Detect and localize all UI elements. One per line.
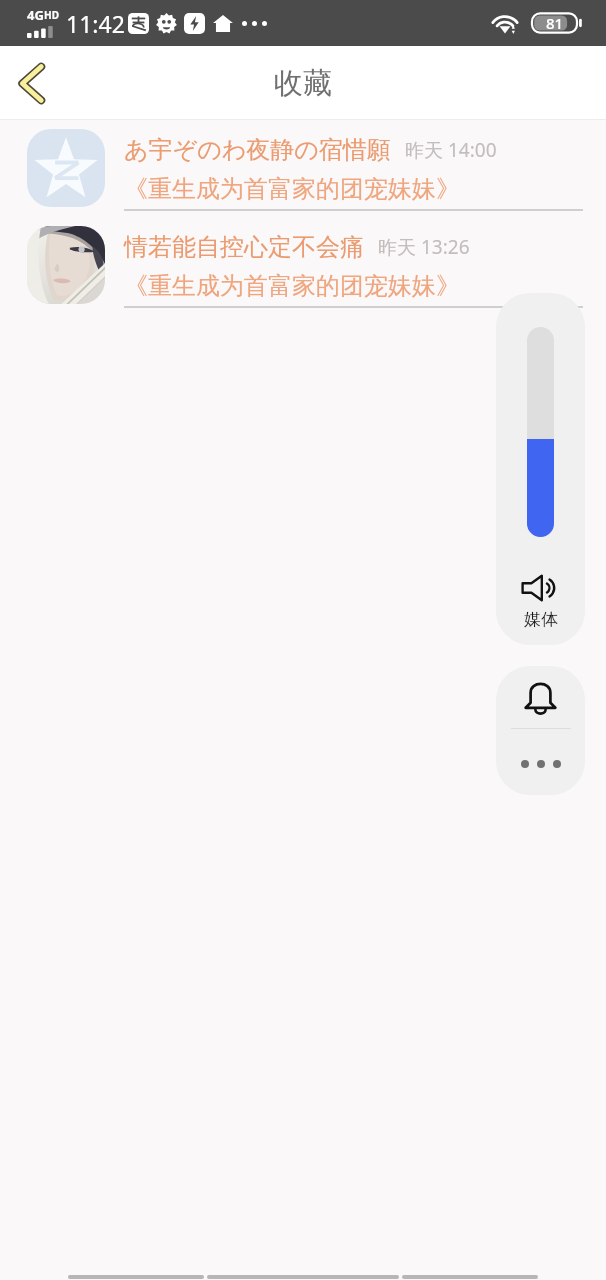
staticText: 情若能自控心定不会痛: [124, 232, 364, 262]
staticText: 媒体: [524, 609, 558, 630]
staticText: 收藏: [274, 65, 332, 102]
button[interactable]: Ring mode: [496, 666, 585, 730]
staticText: 81: [546, 13, 564, 33]
staticText: HD: [44, 8, 59, 22]
staticText: 《重生成为首富家的团宠妹妹》: [124, 271, 460, 301]
button[interactable]: Media volume slider: [527, 327, 554, 537]
staticText: 《重生成为首富家的团宠妹妹》: [124, 174, 460, 204]
button[interactable]: 媒体: [496, 566, 585, 645]
staticText: 4G: [27, 6, 44, 24]
staticText: あ宇ぞのわ夜静の宿惜願: [124, 135, 391, 165]
staticText: 昨天 14:00: [405, 137, 497, 163]
button[interactable]: 情若能自控心定不会痛: [0, 223, 606, 320]
button[interactable]: Back: [0, 46, 62, 120]
staticText: 昨天 13:26: [378, 234, 470, 260]
button[interactable]: More sound settings: [496, 731, 585, 795]
staticText: 11:42: [66, 8, 125, 39]
button[interactable]: あ宇ぞのわ夜静の宿惜願: [0, 126, 606, 223]
